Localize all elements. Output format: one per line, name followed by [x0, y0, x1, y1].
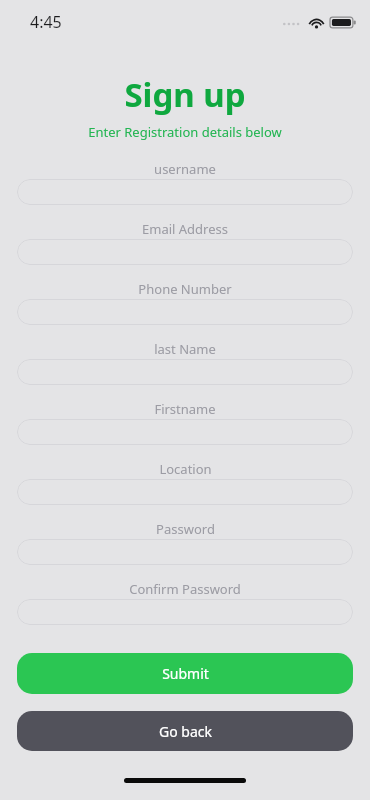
- staticText: last Name: [154, 340, 216, 358]
- button[interactable]: [17, 179, 353, 205]
- staticText: Firstname: [154, 400, 216, 418]
- button[interactable]: Submit: [17, 653, 353, 694]
- staticText: Phone Number: [138, 280, 232, 298]
- button[interactable]: [17, 479, 353, 505]
- staticText: Submit: [162, 664, 209, 683]
- button[interactable]: [17, 359, 353, 385]
- button[interactable]: [17, 299, 353, 325]
- staticText: Enter Registration details below: [0, 123, 370, 141]
- staticText: Password: [156, 520, 215, 538]
- staticText: Email Address: [142, 220, 228, 238]
- button[interactable]: [17, 239, 353, 265]
- staticText: Sign up: [0, 72, 370, 117]
- button[interactable]: [17, 419, 353, 445]
- staticText: 4:45: [30, 11, 62, 33]
- staticText: Go back: [159, 722, 212, 741]
- button[interactable]: [17, 539, 353, 565]
- staticText: username: [154, 160, 216, 178]
- button[interactable]: [17, 599, 353, 625]
- button[interactable]: Go back: [17, 711, 353, 751]
- staticText: Location: [159, 460, 212, 478]
- staticText: Confirm Password: [129, 580, 241, 598]
